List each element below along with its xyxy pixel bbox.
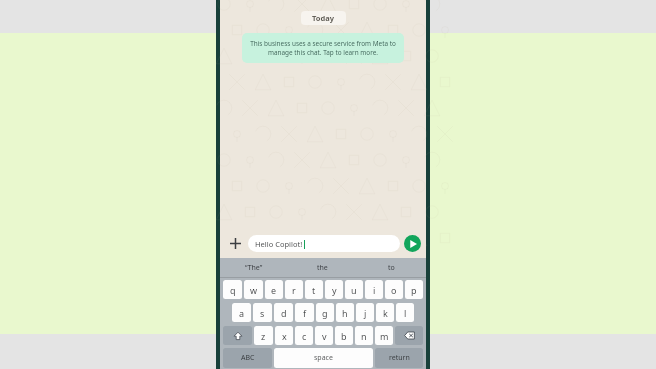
button[interactable]: n (355, 326, 373, 345)
button[interactable]: Send (404, 235, 421, 252)
button[interactable]: k (376, 303, 394, 322)
button[interactable]: Attach (225, 233, 245, 253)
staticText: the (317, 263, 328, 273)
staticText: a (239, 307, 245, 319)
staticText: v (322, 330, 327, 342)
staticText: j (364, 307, 367, 319)
staticText: Today (312, 13, 335, 23)
button[interactable]: g (316, 303, 334, 322)
button[interactable]: u (345, 280, 363, 299)
staticText: k (383, 307, 388, 319)
staticText: “The” (245, 263, 263, 273)
staticText: s (260, 307, 265, 319)
button[interactable]: z (254, 326, 273, 345)
staticText: This business uses a secure service from… (249, 39, 397, 57)
button[interactable]: s (253, 303, 272, 322)
staticText: return (389, 353, 410, 363)
button[interactable]: t (305, 280, 323, 299)
staticText: i (373, 284, 376, 296)
button[interactable]: x (275, 326, 293, 345)
staticText: y (332, 284, 337, 296)
button[interactable]: the (288, 258, 357, 277)
staticText: h (342, 307, 348, 319)
staticText: ABC (241, 353, 255, 363)
button[interactable]: a (232, 303, 251, 322)
button[interactable]: w (244, 280, 263, 299)
staticText: z (261, 330, 266, 342)
button[interactable]: e (265, 280, 283, 299)
button[interactable]: Hello Copilot! (248, 235, 400, 252)
staticText: x (282, 330, 287, 342)
staticText: to (388, 263, 395, 273)
button[interactable]: v (315, 326, 333, 345)
staticText: g (322, 307, 328, 319)
button[interactable]: h (336, 303, 354, 322)
staticText: f (303, 307, 307, 319)
button[interactable]: ABC (223, 348, 272, 368)
button[interactable]: “The” (220, 258, 288, 277)
button[interactable]: q (223, 280, 242, 299)
button[interactable]: f (295, 303, 314, 322)
staticText: b (341, 330, 347, 342)
staticText: c (302, 330, 307, 342)
button[interactable]: o (385, 280, 403, 299)
staticText: n (361, 330, 367, 342)
button[interactable]: return (375, 348, 423, 368)
button[interactable]: This business uses a secure service from… (242, 33, 404, 63)
staticText: o (391, 284, 397, 296)
staticText: e (271, 284, 277, 296)
button[interactable]: m (375, 326, 393, 345)
staticText: d (281, 307, 287, 319)
staticText: Hello Copilot! (255, 239, 303, 249)
button[interactable]: Today (301, 11, 346, 25)
button[interactable]: Backspace (395, 326, 423, 345)
button[interactable]: y (325, 280, 343, 299)
button[interactable]: c (295, 326, 313, 345)
staticText: m (380, 330, 389, 342)
staticText: u (351, 284, 357, 296)
button[interactable]: b (335, 326, 353, 345)
button[interactable]: l (396, 303, 414, 322)
button[interactable]: r (285, 280, 303, 299)
staticText: space (314, 353, 333, 363)
staticText: r (292, 284, 296, 296)
staticText: t (312, 284, 316, 296)
button[interactable]: Shift (223, 326, 252, 345)
button[interactable]: i (365, 280, 383, 299)
button[interactable]: to (357, 258, 426, 277)
button[interactable]: space (274, 348, 373, 368)
button[interactable]: p (405, 280, 423, 299)
staticText: w (250, 284, 258, 296)
button[interactable]: d (274, 303, 293, 322)
staticText: q (230, 284, 236, 296)
staticText: l (404, 307, 407, 319)
staticText: p (411, 284, 417, 296)
button[interactable]: j (356, 303, 374, 322)
